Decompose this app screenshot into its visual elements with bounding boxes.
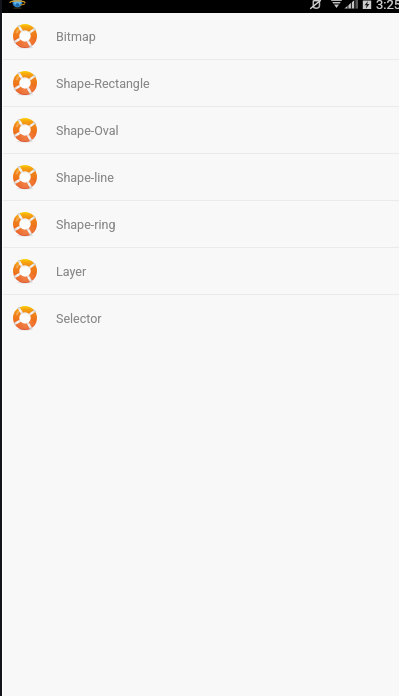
staticText: Bitmap xyxy=(56,29,96,44)
button[interactable]: Layer xyxy=(0,248,399,294)
staticText: Shape-line xyxy=(56,170,114,185)
button[interactable]: Selector xyxy=(0,295,399,341)
button[interactable]: Bitmap xyxy=(0,13,399,59)
staticText: 3:25 xyxy=(376,0,399,10)
button[interactable]: Shape-line xyxy=(0,154,399,200)
staticText: Shape-Oval xyxy=(56,123,119,138)
staticText: Shape-Rectangle xyxy=(56,76,150,91)
button[interactable]: Shape-ring xyxy=(0,201,399,247)
staticText: Layer xyxy=(56,264,87,279)
staticText: Selector xyxy=(56,311,102,326)
button[interactable]: Shape-Rectangle xyxy=(0,60,399,106)
button[interactable]: Shape-Oval xyxy=(0,107,399,153)
staticText: Shape-ring xyxy=(56,217,116,232)
